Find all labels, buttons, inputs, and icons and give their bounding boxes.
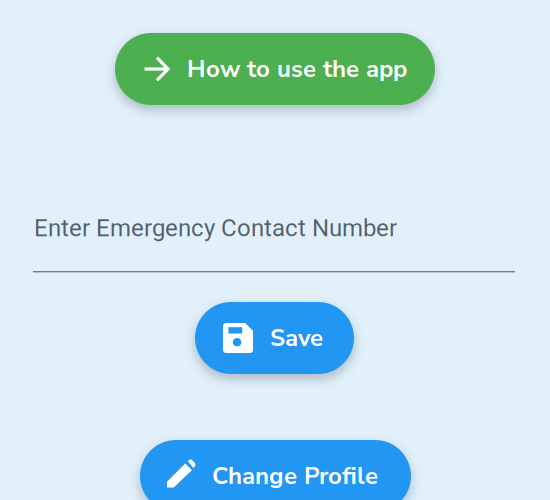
button[interactable]: How to use the app <box>115 33 435 105</box>
staticText: Enter Emergency Contact Number <box>34 214 397 242</box>
staticText: How to use the app <box>187 53 407 85</box>
button[interactable]: Save <box>195 302 354 374</box>
staticText: Change Profile <box>212 460 378 492</box>
staticText: Save <box>270 322 323 354</box>
button[interactable]: Change Profile <box>140 440 411 500</box>
